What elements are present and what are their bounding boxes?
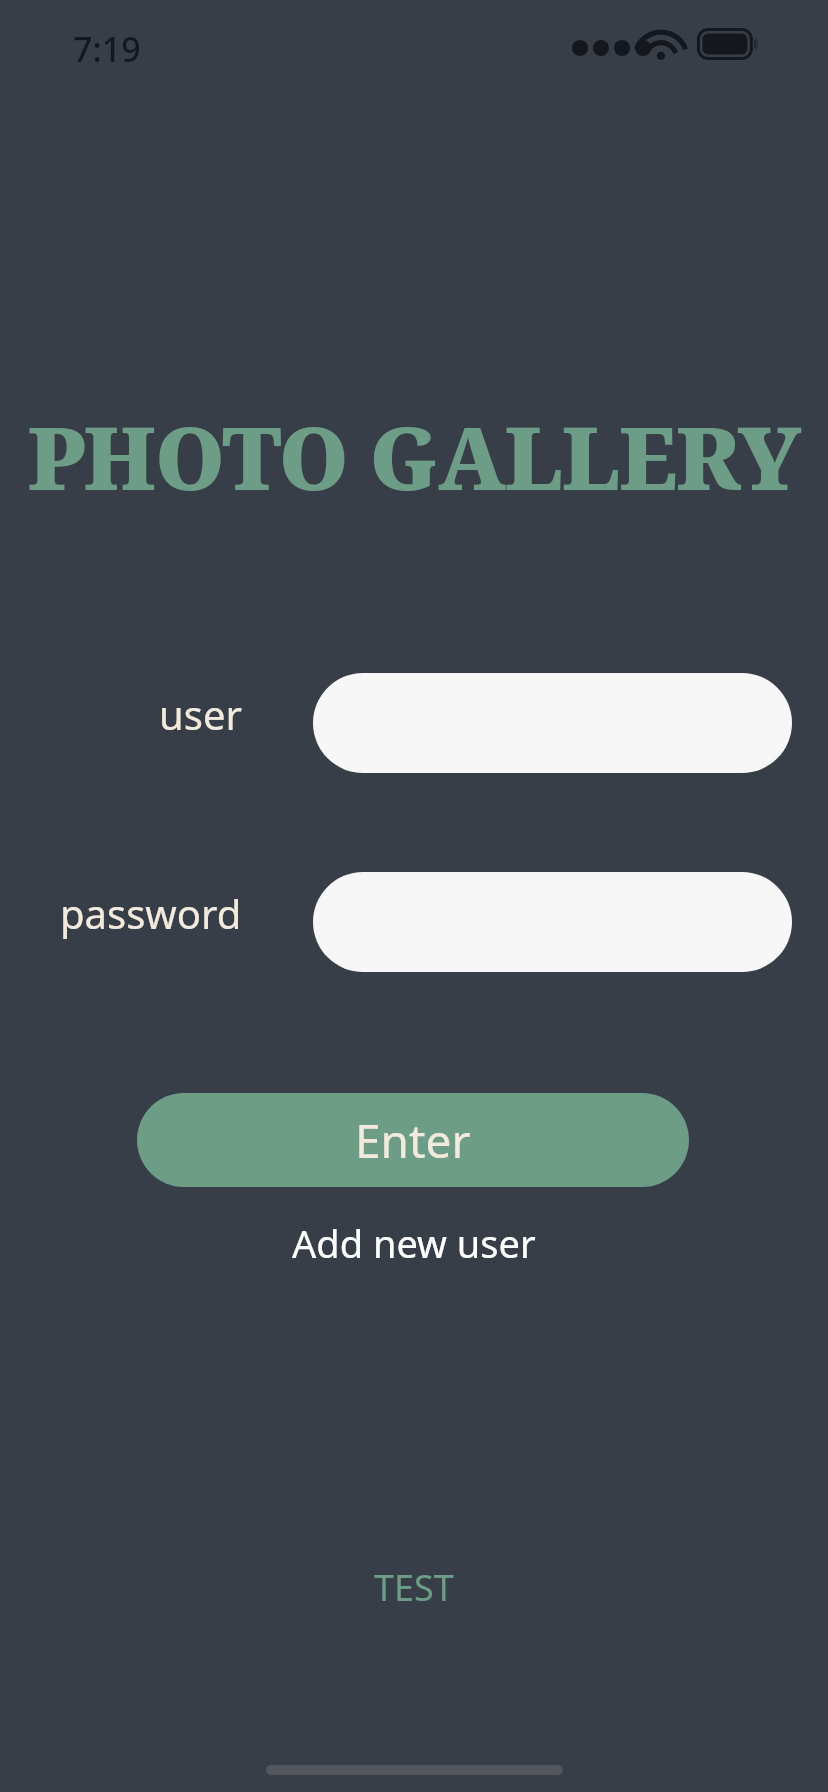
staticText: user bbox=[159, 687, 242, 741]
button[interactable]: user bbox=[313, 673, 792, 773]
button[interactable]: password bbox=[313, 872, 792, 972]
staticText: PHOTO GALLERY bbox=[0, 398, 828, 515]
button[interactable]: Add new user bbox=[0, 1212, 828, 1274]
staticText: TEST bbox=[374, 1563, 454, 1612]
staticText: Add new user bbox=[292, 1217, 536, 1269]
button[interactable]: TEST bbox=[0, 1558, 828, 1616]
button[interactable]: Enter bbox=[137, 1093, 689, 1187]
staticText: Enter bbox=[355, 1109, 471, 1172]
staticText: 7:19 bbox=[73, 26, 141, 72]
staticText: password bbox=[60, 886, 242, 940]
